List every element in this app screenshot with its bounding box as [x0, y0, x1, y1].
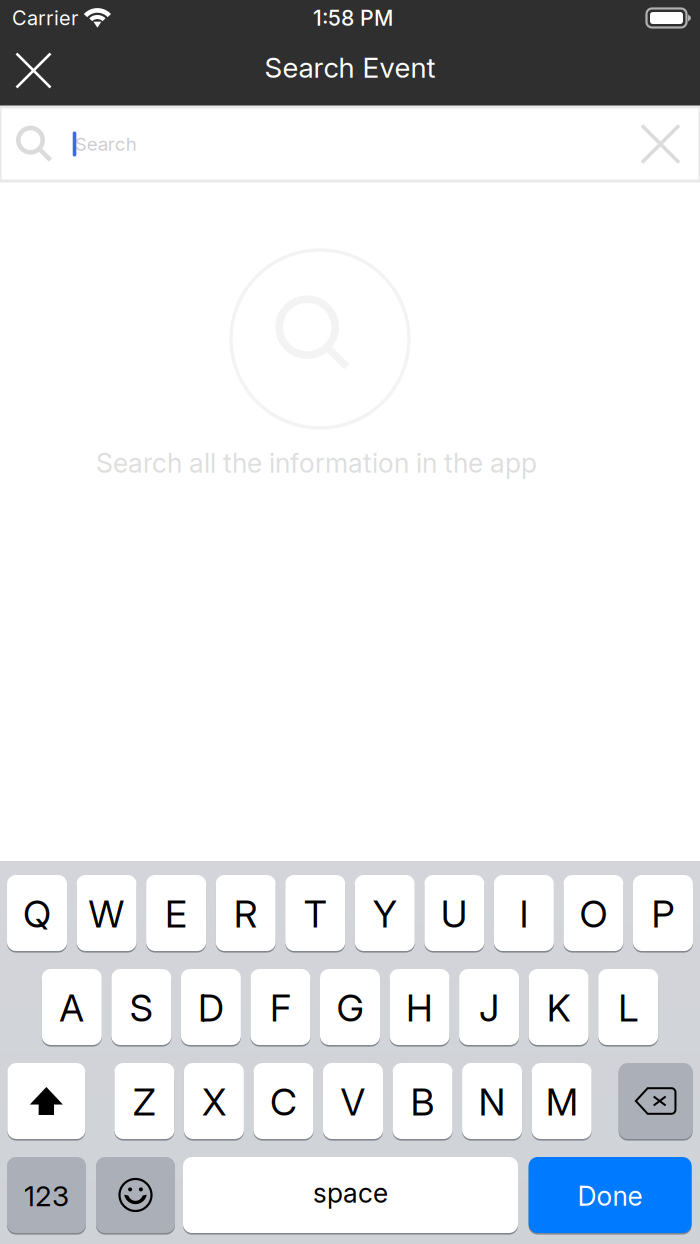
- staticText: Search all the information in the app: [96, 447, 537, 479]
- button[interactable]: G: [320, 968, 380, 1046]
- staticText: T: [304, 891, 327, 937]
- staticText: V: [340, 1079, 365, 1125]
- button[interactable]: O: [563, 874, 623, 952]
- staticText: U: [441, 891, 468, 937]
- button[interactable]: N: [462, 1062, 522, 1140]
- button[interactable]: W: [77, 874, 137, 952]
- staticText: P: [651, 891, 674, 937]
- staticText: R: [234, 891, 258, 937]
- staticText: Q: [23, 891, 51, 937]
- button[interactable]: Clear text: [621, 107, 700, 181]
- staticText: C: [270, 1079, 297, 1125]
- staticText: N: [479, 1079, 506, 1125]
- button[interactable]: Y: [355, 874, 415, 952]
- staticText: space: [313, 1177, 388, 1209]
- button[interactable]: H: [390, 968, 450, 1046]
- staticText: J: [479, 985, 499, 1031]
- staticText: B: [411, 1079, 435, 1125]
- button[interactable]: 123: [7, 1156, 86, 1234]
- staticText: S: [130, 985, 153, 1031]
- staticText: X: [202, 1079, 226, 1125]
- staticText: D: [198, 985, 224, 1031]
- button[interactable]: space: [183, 1156, 518, 1234]
- button[interactable]: Q: [7, 874, 67, 952]
- button[interactable]: K: [529, 968, 589, 1046]
- button[interactable]: L: [598, 968, 658, 1046]
- button[interactable]: T: [285, 874, 345, 952]
- button[interactable]: R: [216, 874, 276, 952]
- staticText: G: [336, 985, 363, 1031]
- button[interactable]: J: [459, 968, 519, 1046]
- staticText: K: [547, 985, 571, 1031]
- staticText: L: [618, 985, 638, 1031]
- button[interactable]: X: [184, 1062, 244, 1140]
- staticText: Search: [75, 133, 137, 155]
- button[interactable]: B: [393, 1062, 453, 1140]
- button[interactable]: U: [424, 874, 484, 952]
- button[interactable]: Z: [114, 1062, 174, 1140]
- staticText: W: [89, 891, 125, 937]
- staticText: O: [579, 891, 607, 937]
- button[interactable]: S: [111, 968, 171, 1046]
- button[interactable]: D: [181, 968, 241, 1046]
- staticText: F: [270, 985, 291, 1031]
- button[interactable]: C: [253, 1062, 313, 1140]
- staticText: H: [406, 985, 433, 1031]
- button[interactable]: I: [494, 874, 554, 952]
- staticText: Search Event: [264, 51, 435, 84]
- button[interactable]: E: [146, 874, 206, 952]
- staticText: 123: [24, 1179, 69, 1213]
- staticText: Carrier: [12, 6, 78, 30]
- staticText: Y: [373, 891, 397, 937]
- staticText: E: [165, 891, 187, 937]
- button[interactable]: A: [42, 968, 102, 1046]
- staticText: Done: [578, 1180, 643, 1212]
- button[interactable]: P: [633, 874, 693, 952]
- button[interactable]: Delete: [619, 1062, 693, 1140]
- staticText: 1:58 PM: [313, 5, 393, 31]
- button[interactable]: F: [250, 968, 310, 1046]
- button[interactable]: Emoji: [96, 1156, 175, 1234]
- staticText: I: [519, 891, 528, 937]
- button[interactable]: Shift: [7, 1062, 85, 1140]
- button[interactable]: V: [323, 1062, 383, 1140]
- staticText: M: [546, 1079, 578, 1125]
- button[interactable]: M: [532, 1062, 592, 1140]
- staticText: Z: [133, 1079, 156, 1125]
- button[interactable]: Close: [0, 34, 67, 107]
- button[interactable]: Done: [529, 1156, 692, 1234]
- staticText: A: [59, 985, 84, 1031]
